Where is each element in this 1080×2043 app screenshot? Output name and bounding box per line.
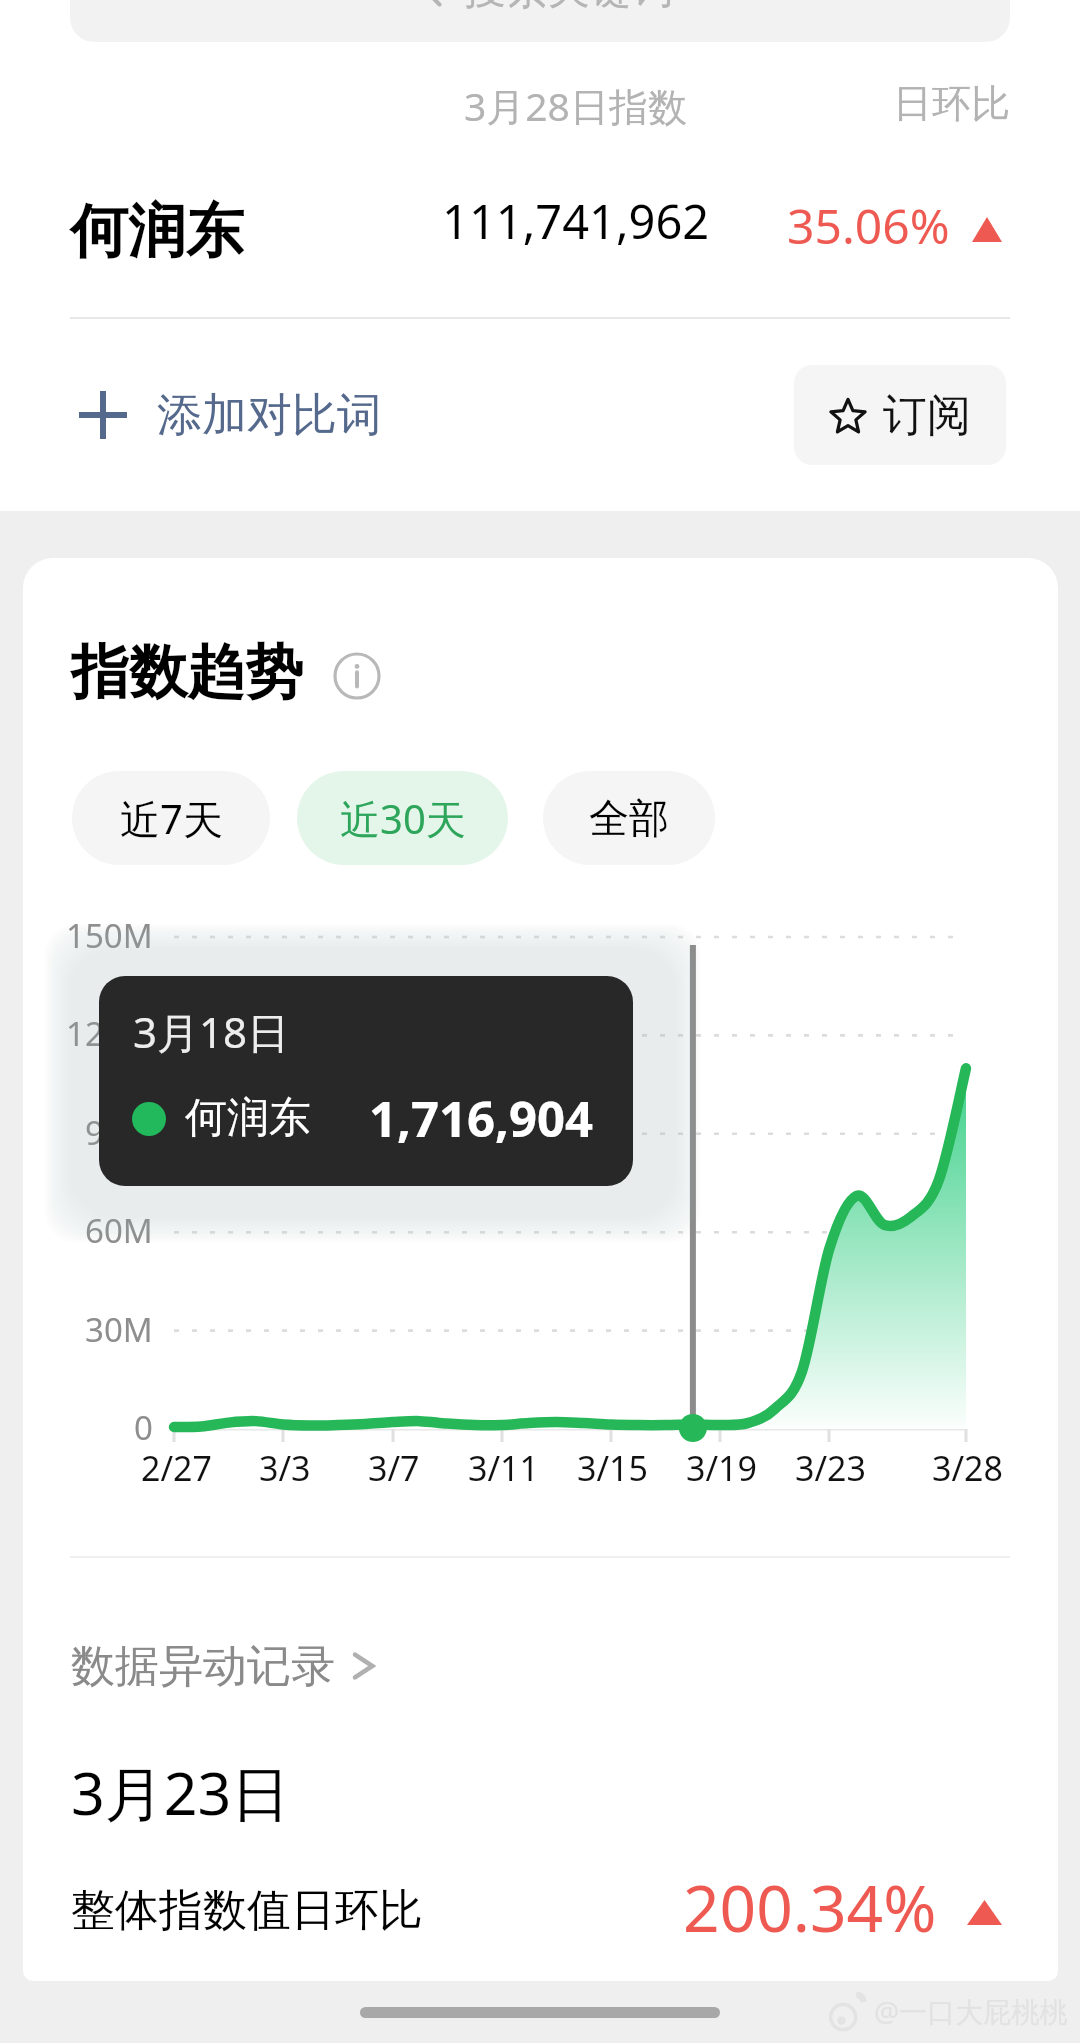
staticText: 数据异动记录 — [71, 1639, 335, 1694]
staticText: 60M — [85, 1208, 153, 1253]
staticText: 近30天 — [340, 791, 466, 846]
staticText: 200.34% — [683, 1864, 937, 1951]
button[interactable]: 信息说明 — [333, 652, 381, 700]
staticText: 111,741,962 — [442, 189, 710, 253]
button[interactable]: 近30天 — [297, 771, 508, 865]
staticText: 添加对比词 — [157, 387, 382, 444]
staticText: 何润东 — [70, 195, 244, 268]
staticText: 整体指数值日环比 — [71, 1883, 423, 1938]
staticText: 搜索关键词 — [464, 0, 674, 16]
staticText: 2/27 — [141, 1445, 212, 1491]
staticText: 150M — [66, 913, 153, 958]
button[interactable]: 添加对比词 — [60, 372, 382, 458]
staticText: 3/15 — [577, 1445, 648, 1491]
staticText: 全部 — [589, 793, 669, 843]
staticText: 3月18日 — [133, 1003, 290, 1060]
button[interactable]: 近7天 — [72, 771, 270, 865]
staticText: 指数趋势 — [71, 636, 303, 709]
staticText: 订阅 — [883, 388, 971, 443]
staticText: 3/7 — [368, 1445, 420, 1491]
staticText: 日环比 — [893, 79, 1010, 128]
staticText: 90M — [85, 1110, 153, 1155]
staticText: 3/11 — [468, 1445, 539, 1491]
staticText: 35.06% — [787, 193, 950, 258]
staticText: 何润东 — [185, 1092, 311, 1145]
staticText: 30M — [85, 1307, 153, 1352]
staticText: 120M — [66, 1011, 153, 1056]
staticText: 3/28 — [932, 1445, 1003, 1491]
staticText: 0 — [134, 1405, 153, 1450]
button[interactable]: 数据异动记录 — [71, 1632, 379, 1700]
button[interactable]: 搜索关键词 — [70, 0, 1010, 42]
staticText: 1,716,904 — [369, 1085, 594, 1152]
staticText: @一口大屁桃桃 — [874, 1992, 1068, 2030]
button[interactable]: 全部 — [543, 771, 715, 865]
button[interactable]: 订阅 — [794, 365, 1006, 465]
staticText: 3月28日指数 — [464, 79, 687, 132]
staticText: 3月23日 — [71, 1752, 291, 1833]
staticText: 3/3 — [259, 1445, 311, 1491]
staticText: 3/19 — [686, 1445, 757, 1491]
staticText: 3/23 — [795, 1445, 866, 1491]
staticText: 近7天 — [120, 791, 223, 846]
